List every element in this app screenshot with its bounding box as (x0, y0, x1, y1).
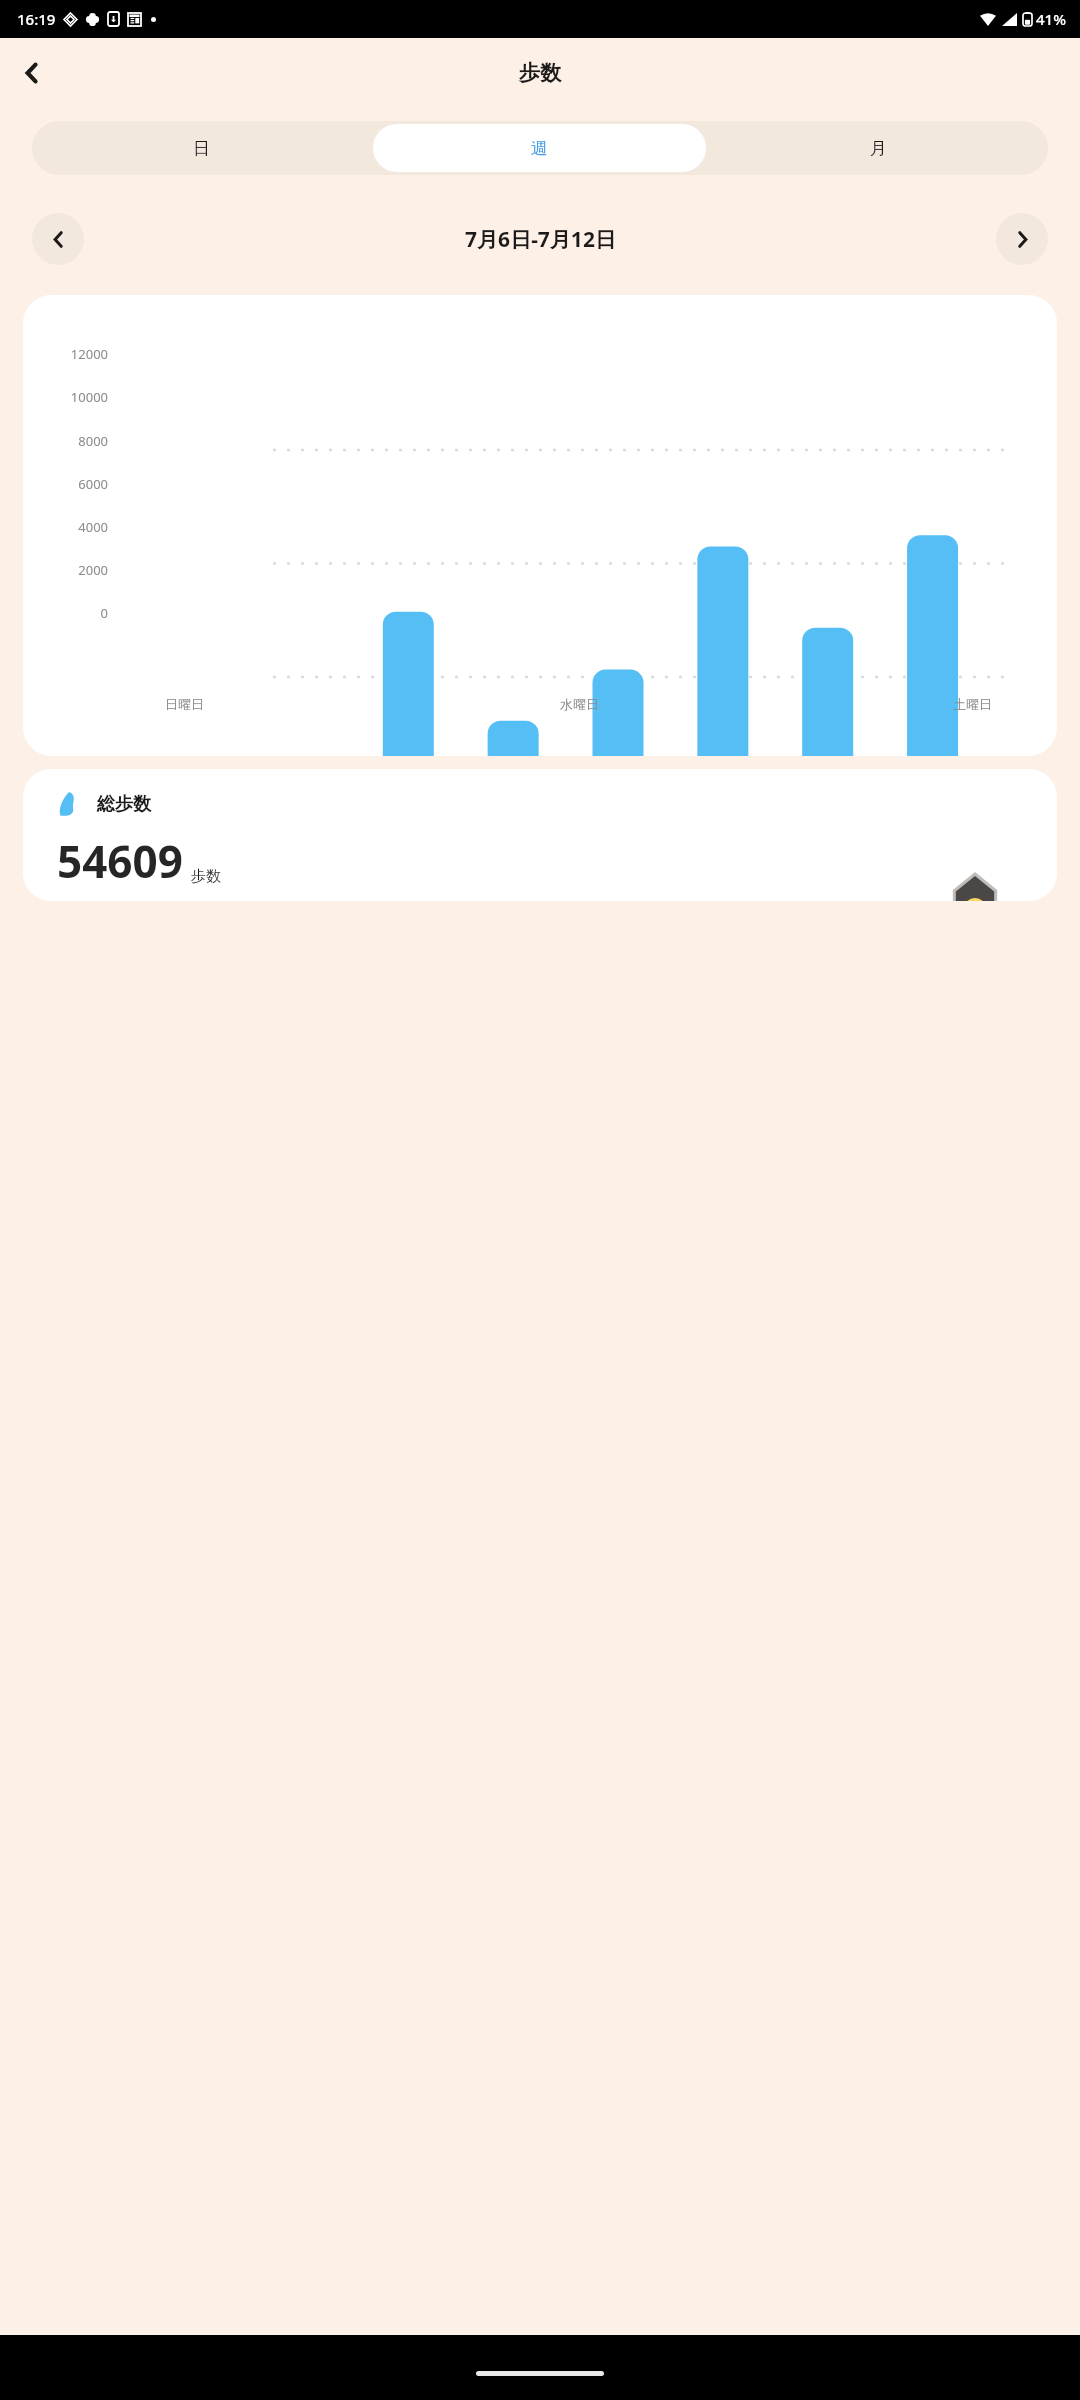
staticText: 54609 (57, 831, 183, 891)
staticText: 月 (870, 138, 887, 159)
button[interactable]: 日 (35, 124, 367, 172)
staticText: 16:19 (17, 9, 56, 29)
staticText: 日 (193, 138, 210, 159)
staticText: 総歩数 (97, 793, 151, 816)
button[interactable]: 月 (712, 124, 1045, 172)
staticText: 0 (100, 604, 108, 622)
staticText: 土曜日 (953, 696, 992, 712)
staticText: 2000 (78, 561, 108, 579)
staticText: 歩数 (519, 60, 561, 86)
staticText: 41% (1036, 9, 1066, 29)
staticText: 水曜日 (560, 696, 599, 712)
button[interactable]: 週 (373, 124, 706, 172)
staticText: 12000 (70, 345, 108, 363)
staticText: 8000 (78, 432, 108, 450)
button[interactable]: Next week (996, 213, 1048, 265)
staticText: 4000 (78, 518, 108, 536)
staticText: 6000 (78, 475, 108, 493)
button[interactable]: Previous week (32, 213, 84, 265)
button[interactable]: 総歩数 (23, 769, 1057, 901)
button[interactable]: 12000 (23, 295, 1057, 756)
staticText: 10000 (70, 388, 108, 406)
staticText: 歩数 (191, 867, 221, 886)
staticText: 週 (531, 138, 548, 159)
staticText: 日曜日 (165, 696, 204, 712)
staticText: 7月6日-7月12日 (465, 225, 616, 254)
button[interactable]: Back (8, 49, 56, 97)
